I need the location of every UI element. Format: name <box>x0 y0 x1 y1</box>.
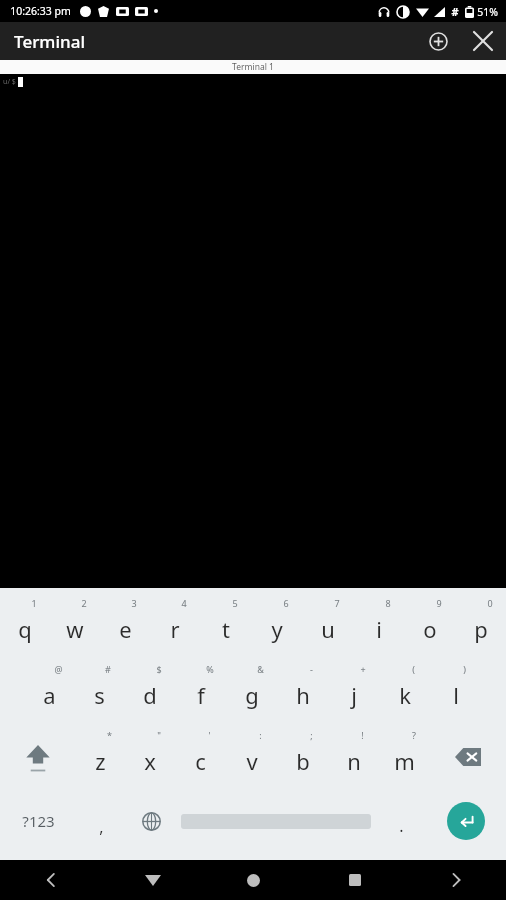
button[interactable]: 5 <box>200 592 251 658</box>
staticText: ; <box>310 729 313 741</box>
staticText: 0 <box>487 597 493 609</box>
button[interactable]: New session <box>416 22 460 60</box>
button[interactable]: Backspace <box>430 724 506 790</box>
staticText: , <box>99 816 104 838</box>
staticText: 6 <box>283 597 289 609</box>
staticText: u/ $ <box>3 77 16 87</box>
button[interactable]: Change language <box>126 790 176 852</box>
button[interactable]: ' <box>175 724 226 790</box>
staticText: ( <box>412 663 415 675</box>
button[interactable]: Back <box>0 860 102 900</box>
button[interactable]: 2 <box>50 592 100 658</box>
button[interactable]: $ <box>124 658 175 724</box>
staticText: ? <box>412 729 416 741</box>
staticText: 7 <box>334 597 340 609</box>
button[interactable]: ! <box>328 724 379 790</box>
staticText: i <box>376 614 382 644</box>
staticText: $ <box>156 663 162 675</box>
button[interactable]: 1 <box>0 592 50 658</box>
button[interactable]: 6 <box>251 592 302 658</box>
staticText: x <box>144 746 156 776</box>
staticText: y <box>271 614 283 644</box>
button[interactable]: : <box>226 724 277 790</box>
button[interactable]: . <box>376 790 426 852</box>
staticText: ' <box>208 729 211 741</box>
button[interactable]: Forward <box>405 860 506 900</box>
staticText: l <box>453 680 459 710</box>
button[interactable]: Shift <box>0 724 75 790</box>
staticText: d <box>143 680 157 710</box>
staticText: z <box>95 746 106 776</box>
staticText: ) <box>463 663 466 675</box>
staticText: t <box>222 614 230 644</box>
staticText: # <box>105 663 111 675</box>
staticText: p <box>474 614 488 644</box>
staticText: % <box>206 663 214 675</box>
button[interactable]: ( <box>379 658 430 724</box>
button[interactable]: " <box>125 724 175 790</box>
staticText: f <box>197 680 205 710</box>
staticText: c <box>195 746 206 776</box>
button[interactable]: & <box>226 658 277 724</box>
staticText: b <box>296 746 310 776</box>
button[interactable]: 8 <box>353 592 404 658</box>
staticText: Terminal <box>14 30 85 53</box>
button[interactable]: # <box>74 658 124 724</box>
button[interactable]: 9 <box>404 592 455 658</box>
staticText: a <box>43 680 56 710</box>
button[interactable]: ?123 <box>0 790 76 852</box>
button[interactable]: Space <box>176 790 376 852</box>
staticText: r <box>170 614 180 644</box>
button[interactable]: ? <box>379 724 430 790</box>
button[interactable]: 4 <box>150 592 200 658</box>
button[interactable]: 7 <box>302 592 353 658</box>
staticText: 51% <box>477 5 498 19</box>
button[interactable]: ) <box>430 658 481 724</box>
button[interactable]: 0 <box>455 592 506 658</box>
staticText: e <box>119 614 132 644</box>
button[interactable]: u/ $ <box>0 74 506 588</box>
staticText: 1 <box>31 597 37 609</box>
staticText: 2 <box>81 597 87 609</box>
staticText: Terminal 1 <box>232 61 274 73</box>
staticText: ! <box>361 729 364 741</box>
staticText: - <box>310 663 313 675</box>
staticText: g <box>245 680 259 710</box>
button[interactable]: Recents <box>304 860 405 900</box>
staticText: m <box>394 746 415 776</box>
staticText: 8 <box>385 597 391 609</box>
button[interactable]: - <box>277 658 328 724</box>
button[interactable]: Enter <box>426 790 506 852</box>
staticText: + <box>360 663 366 675</box>
staticText: h <box>296 680 310 710</box>
staticText: j <box>351 680 357 710</box>
button[interactable]: Hide keyboard <box>102 860 203 900</box>
staticText: o <box>423 614 437 644</box>
staticText: & <box>257 663 264 675</box>
staticText: s <box>94 680 105 710</box>
staticText: k <box>399 680 411 710</box>
button[interactable]: Terminal 1 <box>0 60 506 74</box>
staticText: " <box>157 729 161 741</box>
button[interactable]: * <box>75 724 125 790</box>
button[interactable]: Close <box>460 22 506 60</box>
staticText: . <box>399 815 404 837</box>
staticText: : <box>259 729 262 741</box>
staticText: 5 <box>232 597 238 609</box>
staticText: 4 <box>181 597 187 609</box>
staticText: # <box>451 4 459 19</box>
staticText: ?123 <box>22 811 55 831</box>
button[interactable]: ; <box>277 724 328 790</box>
button[interactable]: % <box>175 658 226 724</box>
button[interactable]: , <box>76 790 126 852</box>
staticText: n <box>347 746 361 776</box>
staticText: * <box>107 729 112 741</box>
staticText: q <box>18 614 32 644</box>
button[interactable]: + <box>328 658 379 724</box>
staticText: @ <box>54 663 63 675</box>
button[interactable]: 3 <box>100 592 150 658</box>
staticText: w <box>66 614 84 644</box>
staticText: 3 <box>131 597 137 609</box>
button[interactable]: @ <box>24 658 74 724</box>
button[interactable]: Home <box>203 860 304 900</box>
